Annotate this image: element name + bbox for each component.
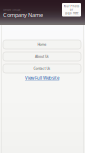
staticText: Logo Here — [65, 11, 78, 15]
button[interactable]: Home — [3, 40, 81, 49]
staticText: Home — [37, 42, 46, 47]
staticText: About Us — [35, 54, 49, 59]
staticText: or — [70, 8, 73, 11]
staticText: Company Name — [3, 11, 43, 19]
staticText: Your Photo — [63, 5, 79, 8]
staticText: View Full Website — [25, 75, 59, 81]
button[interactable]: About Us — [3, 52, 81, 61]
button[interactable]: View Full Website — [25, 75, 59, 81]
button[interactable]: Contact Us — [3, 64, 81, 73]
staticText: Company Message — [3, 8, 20, 11]
staticText: Contact Us — [33, 66, 50, 71]
